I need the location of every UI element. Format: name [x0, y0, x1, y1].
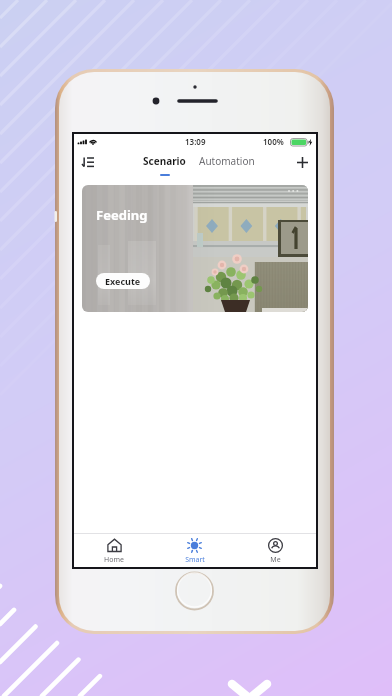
button[interactable]: Smart: [154, 534, 235, 567]
button[interactable]: Home: [74, 534, 154, 567]
staticText: Automation: [199, 154, 255, 168]
staticText: Execute: [105, 275, 141, 287]
staticText: Scenario: [143, 154, 186, 168]
button[interactable]: Add: [292, 152, 312, 172]
staticText: 13:09: [185, 136, 206, 147]
staticText: Smart: [185, 555, 205, 563]
staticText: 100%: [263, 136, 284, 147]
button[interactable]: Sort: [78, 152, 98, 172]
button[interactable]: Feeding: [82, 185, 308, 312]
staticText: Home: [104, 555, 124, 563]
button[interactable]: Me: [235, 534, 316, 567]
staticText: Me: [270, 555, 281, 563]
staticText: Feeding: [96, 206, 148, 224]
button[interactable]: Automation: [197, 155, 257, 169]
button[interactable]: Scenario: [141, 155, 188, 169]
button[interactable]: Execute: [96, 273, 150, 289]
